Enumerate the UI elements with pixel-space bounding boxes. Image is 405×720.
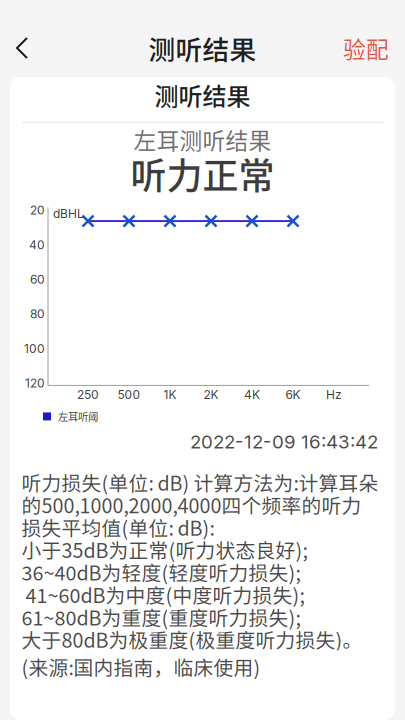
staticText: 的500,1000,2000,4000四个频率的听力 — [21, 493, 361, 516]
staticText: 验配 — [343, 32, 389, 64]
staticText: 小于35dB为正常(听力状态良好); — [21, 538, 307, 561]
staticText: 测听结果 — [154, 81, 250, 109]
staticText: 2K — [203, 387, 218, 402]
staticText: 4K — [244, 387, 260, 402]
staticText: 40 — [29, 237, 45, 252]
staticText: 20 — [30, 203, 45, 217]
staticText: dBHL — [53, 206, 84, 221]
staticText: 1K — [163, 387, 176, 402]
staticText: 250 — [77, 387, 99, 402]
staticText: 左耳听阈 — [58, 409, 98, 423]
staticText: 6K — [285, 387, 300, 402]
staticText: 100 — [24, 341, 45, 356]
staticText: 80 — [30, 307, 45, 321]
staticText: (来源:国内指南，临床使用) — [21, 655, 260, 678]
button[interactable]: 返回 — [0, 24, 44, 72]
staticText: 500 — [117, 387, 140, 402]
staticText: 大于80dB为极重度(极重度听力损失)。 — [21, 628, 362, 650]
button[interactable]: 验配 — [327, 21, 405, 75]
staticText: Hz — [326, 387, 342, 402]
staticText: 左耳测听结果 — [133, 126, 271, 153]
staticText: 36~40dB为轻度(轻度听力损失); — [21, 561, 300, 583]
staticText: 听力正常 — [130, 153, 274, 194]
staticText: 61~80dB为重度(重度听力损失); — [21, 606, 300, 628]
staticText: 测听结果 — [148, 29, 256, 67]
staticText: 听力损失(单位: dB) 计算方法为:计算耳朵 — [21, 471, 378, 493]
staticText: 60 — [30, 272, 45, 287]
staticText: 41~60dB为中度(中度听力损失); — [21, 583, 304, 606]
staticText: 120 — [25, 376, 45, 390]
staticText: 损失平均值(单位: dB): — [21, 516, 214, 538]
staticText: 2022-12-09 16:43:42 — [190, 430, 378, 453]
